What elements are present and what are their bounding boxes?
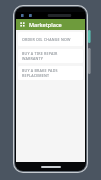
button[interactable]: ORDER OIL CHANGE NOW <box>18 32 83 46</box>
button[interactable]: Open navigation menu <box>19 21 26 28</box>
staticText: ORDER OIL CHANGE NOW <box>22 37 71 42</box>
staticText: Marketplace <box>29 21 62 28</box>
button[interactable]: BUY A TIRE REPAIR WARRANTY <box>18 49 83 63</box>
staticText: BUY A TIRE REPAIR WARRANTY <box>22 51 79 61</box>
button[interactable]: BUY A BRAKE PADS REPLACEMENT <box>18 66 83 80</box>
staticText: BUY A BRAKE PADS REPLACEMENT <box>22 68 79 78</box>
